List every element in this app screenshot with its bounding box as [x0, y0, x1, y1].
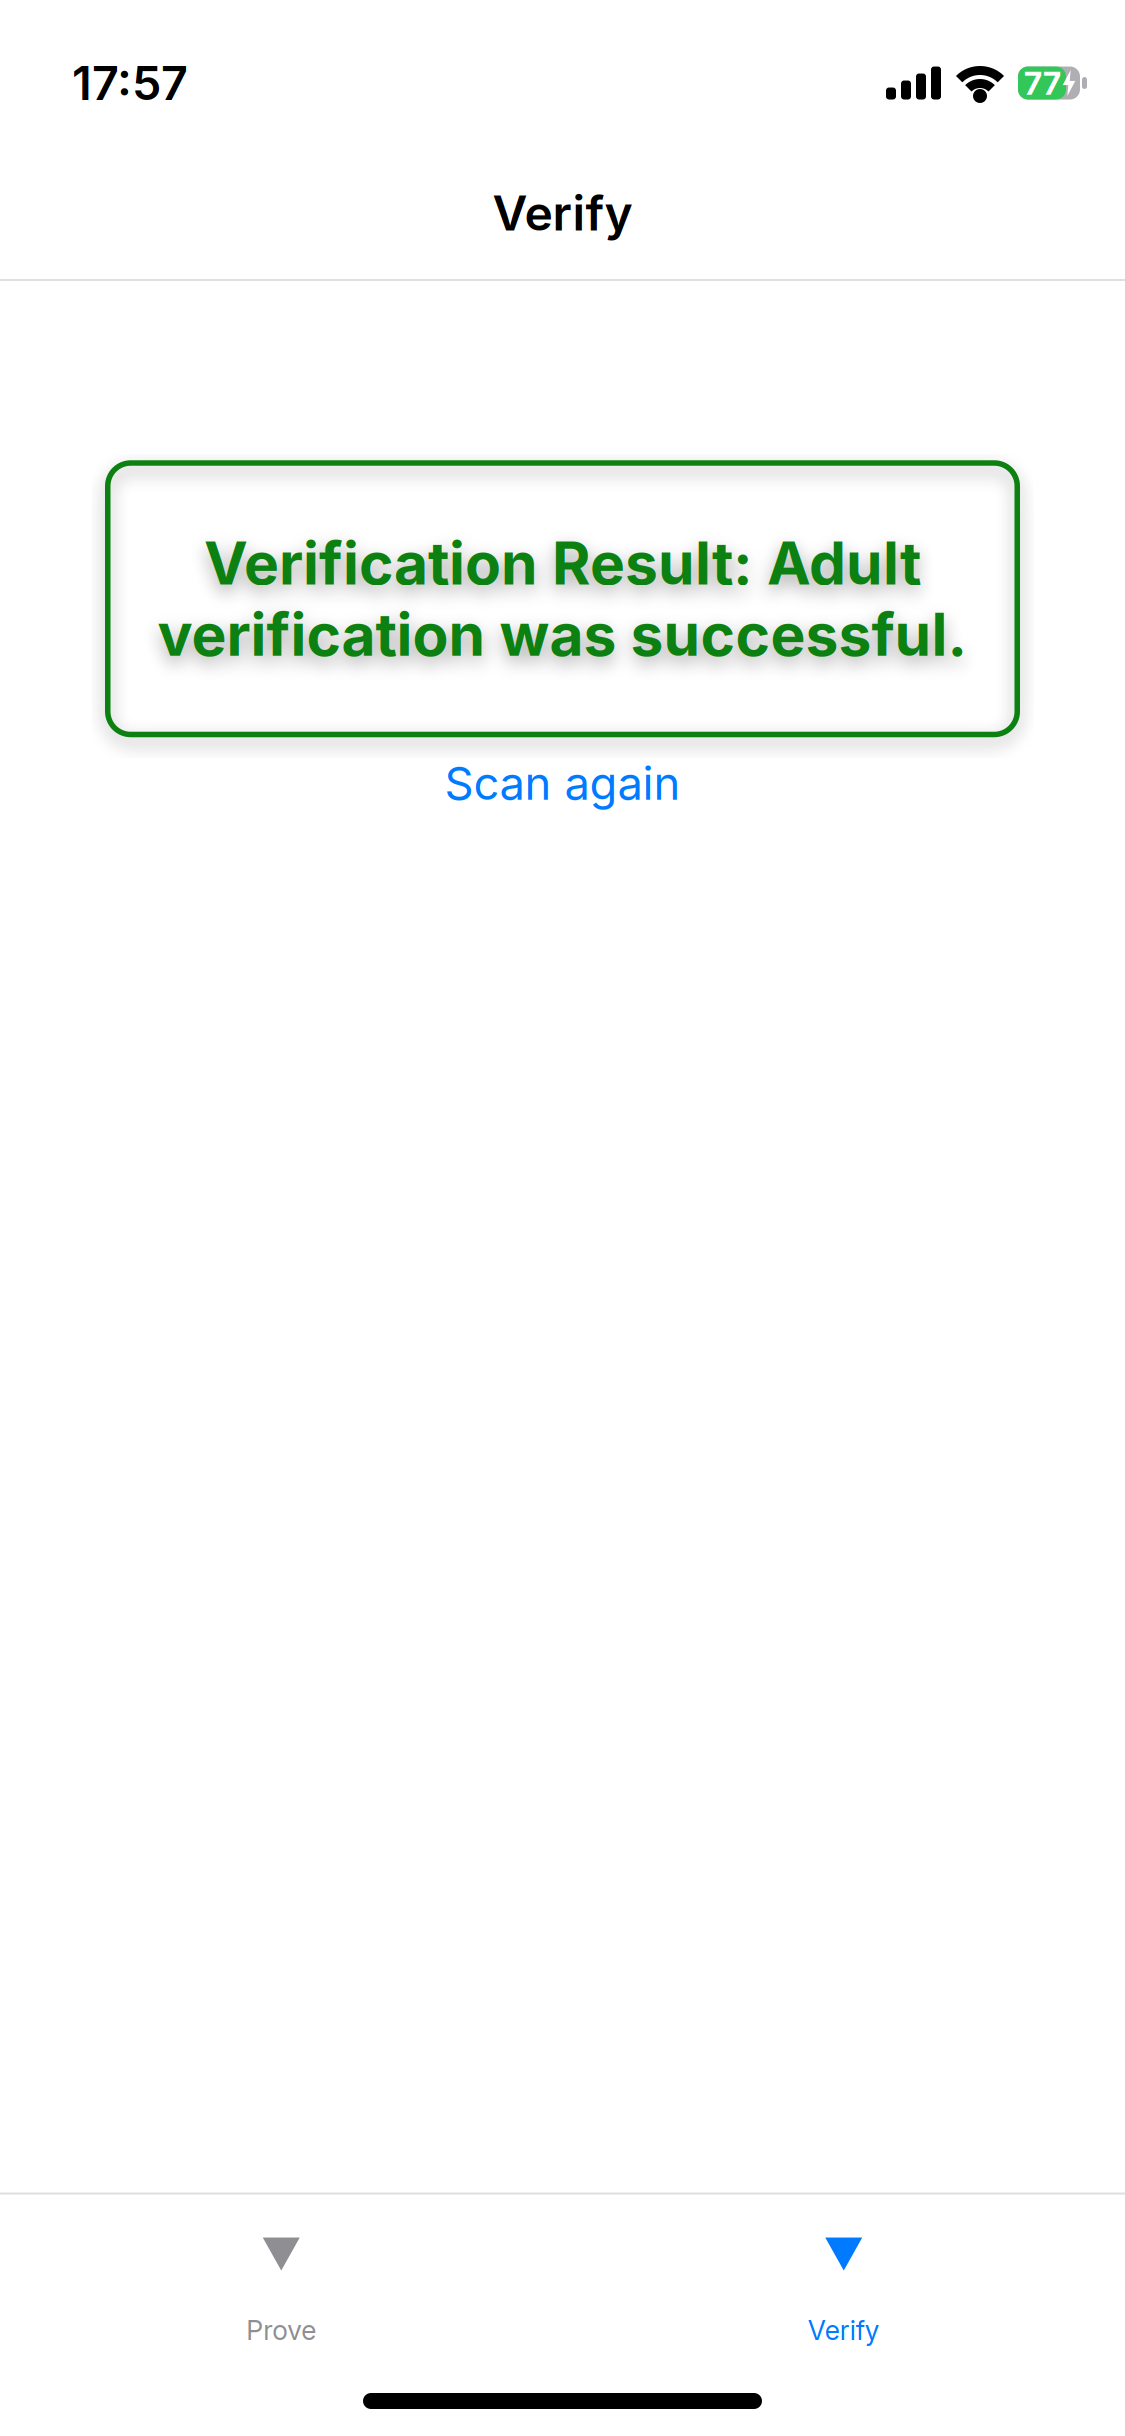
staticText: verification was successful. — [157, 600, 967, 669]
staticText: Prove — [246, 2314, 316, 2346]
button[interactable]: Scan again — [444, 756, 680, 810]
button[interactable]: Prove — [0, 2237, 562, 2346]
staticText: Verify — [808, 2314, 880, 2346]
staticText: 77 — [1024, 64, 1061, 102]
staticText: Verify — [492, 185, 632, 241]
staticText: Verification Result: Adult — [204, 528, 921, 598]
staticText: 17:57 — [72, 55, 188, 111]
staticText: Scan again — [444, 756, 680, 810]
button[interactable]: Verify — [562, 2237, 1125, 2346]
